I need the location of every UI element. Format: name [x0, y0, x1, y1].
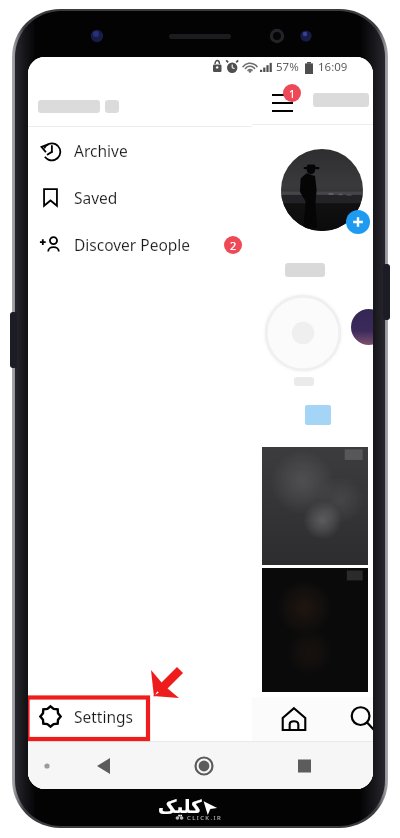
staticText: CLICK.IR — [187, 814, 223, 822]
staticText: Saved — [74, 187, 118, 208]
staticText: 16:09 — [318, 59, 348, 75]
button[interactable]: Discover People — [28, 221, 252, 268]
staticText: 1 — [289, 86, 296, 101]
button[interactable]: Search — [345, 701, 373, 737]
staticText: 2 — [230, 238, 237, 253]
staticText: Settings — [74, 706, 133, 727]
button[interactable]: Home — [276, 701, 312, 737]
button[interactable]: Saved — [28, 174, 252, 221]
button[interactable]: Settings — [28, 693, 252, 740]
button[interactable]: Archive — [28, 127, 252, 174]
staticText: 57% — [276, 59, 299, 75]
staticText: Archive — [74, 140, 128, 161]
staticText: Discover People — [74, 234, 191, 255]
staticText: کلیک — [158, 796, 202, 817]
